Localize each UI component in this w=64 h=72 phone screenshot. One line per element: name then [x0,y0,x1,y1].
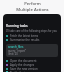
staticText: query: "report" limit: 20 [8,49,27,55]
staticText: Summarise the results [10,38,40,42]
button[interactable]: Open the document [6,59,58,63]
staticText: Notify the team [10,71,31,72]
button[interactable]: Notify the team [6,71,58,72]
staticText: search_files [8,45,24,49]
button[interactable]: Summarise the results [6,38,58,42]
button[interactable]: search_files [6,44,58,57]
staticText: Open the document [10,59,37,63]
staticText: Apply the changes [10,63,35,67]
button[interactable]: Fetch the latest items [6,34,58,38]
staticText: Fetch the latest items [10,34,39,38]
staticText: Running tasks [6,24,28,28]
staticText: I'll take care of the following steps fo… [6,29,57,33]
button[interactable]: Apply the changes [6,63,58,67]
staticText: Perform Multiple Actions [16,1,49,12]
button[interactable]: Save the new version [6,67,58,71]
staticText: Save the new version [10,67,38,71]
